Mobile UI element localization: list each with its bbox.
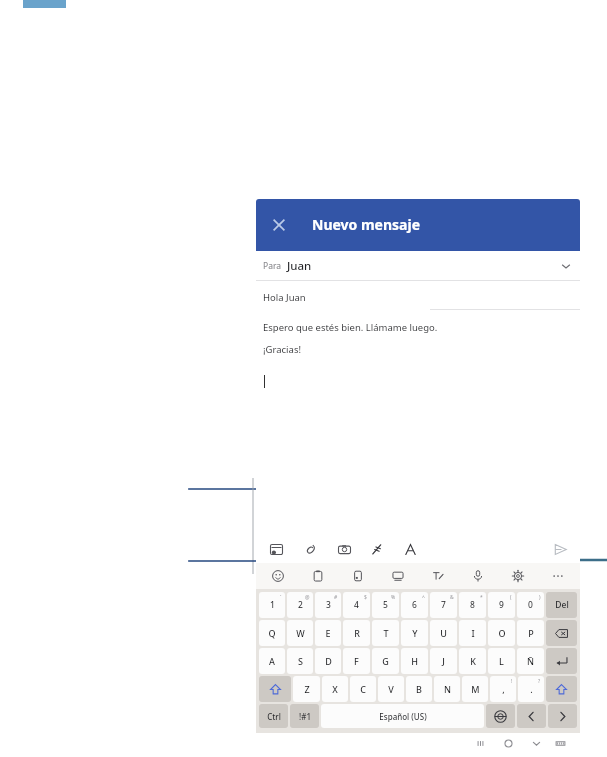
staticText: * (480, 594, 483, 601)
staticText: L (499, 655, 504, 667)
staticText: 5 (383, 599, 388, 611)
button[interactable]: 3 (315, 592, 341, 618)
staticText: Y (412, 627, 418, 639)
button[interactable]: X (322, 676, 348, 702)
button[interactable]: Ajustes del teclado (506, 564, 530, 588)
button[interactable]: T (372, 620, 399, 646)
button[interactable]: B (406, 676, 432, 702)
staticText: R (354, 627, 360, 639)
staticText: Para (263, 260, 282, 272)
button[interactable]: M (462, 676, 488, 702)
button[interactable]: D (315, 648, 341, 674)
staticText: X (332, 683, 338, 695)
button[interactable]: Dictado por voz (466, 564, 490, 588)
button[interactable]: Emoji (266, 564, 290, 588)
button[interactable]: Hola Juan (256, 281, 580, 535)
staticText: Espero que estés bien. Llámame luego. (263, 321, 438, 334)
button[interactable]: Del (546, 592, 577, 618)
button[interactable]: R (343, 620, 370, 646)
button[interactable]: Mayúsculas (546, 676, 577, 702)
button[interactable]: Portapapeles (306, 564, 330, 588)
button[interactable]: Cambiar idioma (486, 704, 515, 728)
button[interactable]: Ñ (517, 648, 544, 674)
button[interactable]: Retroceso (546, 620, 577, 646)
button[interactable]: Inicio (500, 735, 516, 751)
button[interactable]: Modo una mano (346, 564, 370, 588)
button[interactable]: 0 (517, 592, 544, 618)
staticText: Q (268, 627, 276, 639)
button[interactable]: Cámara (334, 538, 354, 560)
button[interactable]: F (343, 648, 370, 674)
button[interactable]: 7 (430, 592, 457, 618)
button[interactable]: . (518, 676, 544, 702)
staticText: F (354, 655, 359, 667)
staticText: 3 (326, 599, 331, 611)
button[interactable]: E (315, 620, 341, 646)
button[interactable]: , (490, 676, 516, 702)
staticText: 7 (441, 599, 446, 611)
button[interactable]: !#1 (290, 704, 319, 728)
button[interactable]: 2 (287, 592, 313, 618)
button[interactable]: N (434, 676, 460, 702)
button[interactable]: 4 (343, 592, 370, 618)
staticText: , (502, 683, 505, 695)
button[interactable]: Adjuntar archivo (300, 538, 320, 560)
staticText: 0 (528, 599, 533, 611)
button[interactable]: Formato de texto (400, 538, 420, 560)
button[interactable]: Intro (546, 648, 577, 674)
staticText: D (325, 655, 332, 667)
button[interactable]: Ocultar teclado (528, 735, 544, 751)
staticText: I (471, 627, 475, 639)
button[interactable]: Derecha (548, 704, 577, 728)
button[interactable]: Teclado (552, 735, 568, 751)
button[interactable]: S (287, 648, 313, 674)
button[interactable]: I (459, 620, 486, 646)
button[interactable]: Más opciones (546, 564, 570, 588)
button[interactable]: Y (401, 620, 428, 646)
button[interactable]: V (378, 676, 404, 702)
staticText: J (442, 655, 445, 667)
staticText: W (296, 627, 305, 639)
button[interactable]: C (350, 676, 376, 702)
button[interactable]: K (459, 648, 486, 674)
button[interactable]: 5 (372, 592, 399, 618)
button[interactable]: Mayúsculas (259, 676, 291, 702)
staticText: ^ (422, 594, 425, 601)
button[interactable]: Q (259, 620, 285, 646)
staticText: 4 (354, 599, 359, 611)
button[interactable]: Cerrar (262, 208, 296, 242)
button[interactable]: P (517, 620, 544, 646)
button[interactable]: Teclado flotante (386, 564, 410, 588)
button[interactable]: 9 (488, 592, 515, 618)
button[interactable]: L (488, 648, 515, 674)
staticText: ) (539, 594, 541, 601)
button[interactable]: W (287, 620, 313, 646)
staticText: Juan (287, 258, 312, 274)
staticText: K (470, 655, 476, 667)
staticText: Ctrl (267, 711, 281, 722)
button[interactable]: Dibujar (366, 538, 386, 560)
button[interactable]: Español (US) (321, 704, 484, 728)
staticText: M (471, 683, 480, 695)
button[interactable]: Z (293, 676, 320, 702)
staticText: B (416, 683, 422, 695)
button[interactable]: 6 (401, 592, 428, 618)
button[interactable]: Recientes (472, 735, 488, 751)
button[interactable]: Ctrl (259, 704, 288, 728)
button[interactable]: G (372, 648, 399, 674)
button[interactable]: J (430, 648, 457, 674)
button[interactable]: U (430, 620, 457, 646)
button[interactable]: 1 (259, 592, 285, 618)
staticText: E (325, 627, 331, 639)
button[interactable]: A (259, 648, 285, 674)
button[interactable]: O (488, 620, 515, 646)
button[interactable]: Izquierda (517, 704, 546, 728)
button[interactable]: Enviar (550, 538, 570, 560)
staticText: # (334, 594, 338, 601)
button[interactable]: Escritura a mano (426, 564, 450, 588)
button[interactable]: Para (256, 251, 580, 281)
button[interactable]: 8 (459, 592, 486, 618)
button[interactable]: Insertar imagen (266, 538, 286, 560)
button[interactable]: H (401, 648, 428, 674)
staticText: H (411, 655, 418, 667)
